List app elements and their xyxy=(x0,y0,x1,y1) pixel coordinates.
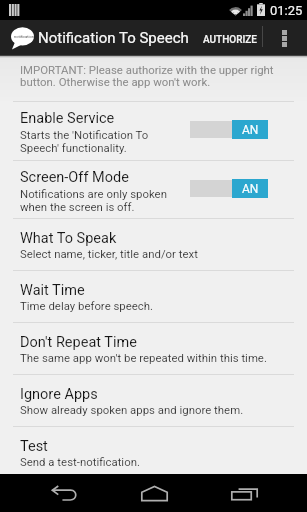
staticText: Screen-Off Mode xyxy=(20,169,129,186)
staticText: Select name, ticker, title and/or text xyxy=(20,247,198,260)
staticText: when the screen is off. xyxy=(20,200,135,213)
staticText: Notification To Speech xyxy=(38,29,189,47)
button[interactable]: Wait Time xyxy=(0,270,307,322)
staticText: Don't Repeat Time xyxy=(20,334,137,351)
staticText: Wait Time xyxy=(20,282,85,299)
button[interactable]: Don't Repeat Time xyxy=(0,322,307,374)
staticText: Show already spoken apps and ignore them… xyxy=(20,403,244,416)
staticText: Notifications are only spoken xyxy=(20,187,167,200)
button[interactable]: What To Speak xyxy=(0,218,307,270)
staticText: Speech' functionality. xyxy=(20,141,127,154)
staticText: 01:25 xyxy=(270,3,303,18)
staticText: What To Speak xyxy=(20,230,117,247)
button[interactable]: Test xyxy=(0,426,307,478)
button[interactable]: Enable Service xyxy=(0,101,307,160)
staticText: Send a test-notification. xyxy=(20,455,140,468)
staticText: notification xyxy=(14,34,35,39)
button[interactable]: Ignore Apps xyxy=(0,374,307,426)
button[interactable]: Back xyxy=(18,474,110,512)
staticText: Time delay before speech. xyxy=(20,299,154,312)
staticText: The same app won't be repeated within th… xyxy=(20,351,267,364)
button[interactable]: Home xyxy=(108,474,200,512)
staticText: AN xyxy=(242,182,259,196)
staticText: Test xyxy=(20,438,48,455)
staticText: AN xyxy=(242,123,259,137)
staticText: Enable Service xyxy=(20,110,115,127)
button[interactable]: More options xyxy=(270,20,307,55)
staticText: Starts the 'Notification To xyxy=(20,128,149,141)
button[interactable]: AUTHORIZE xyxy=(196,22,264,57)
staticText: IMPORTANT: Please authorize with the upp… xyxy=(20,63,274,89)
button[interactable]: Recent apps xyxy=(198,474,290,512)
button[interactable]: AN xyxy=(190,120,268,140)
staticText: AUTHORIZE xyxy=(203,34,257,46)
button[interactable]: Screen-Off Mode xyxy=(0,160,307,218)
staticText: Ignore Apps xyxy=(20,386,98,403)
button[interactable]: AN xyxy=(190,179,268,199)
